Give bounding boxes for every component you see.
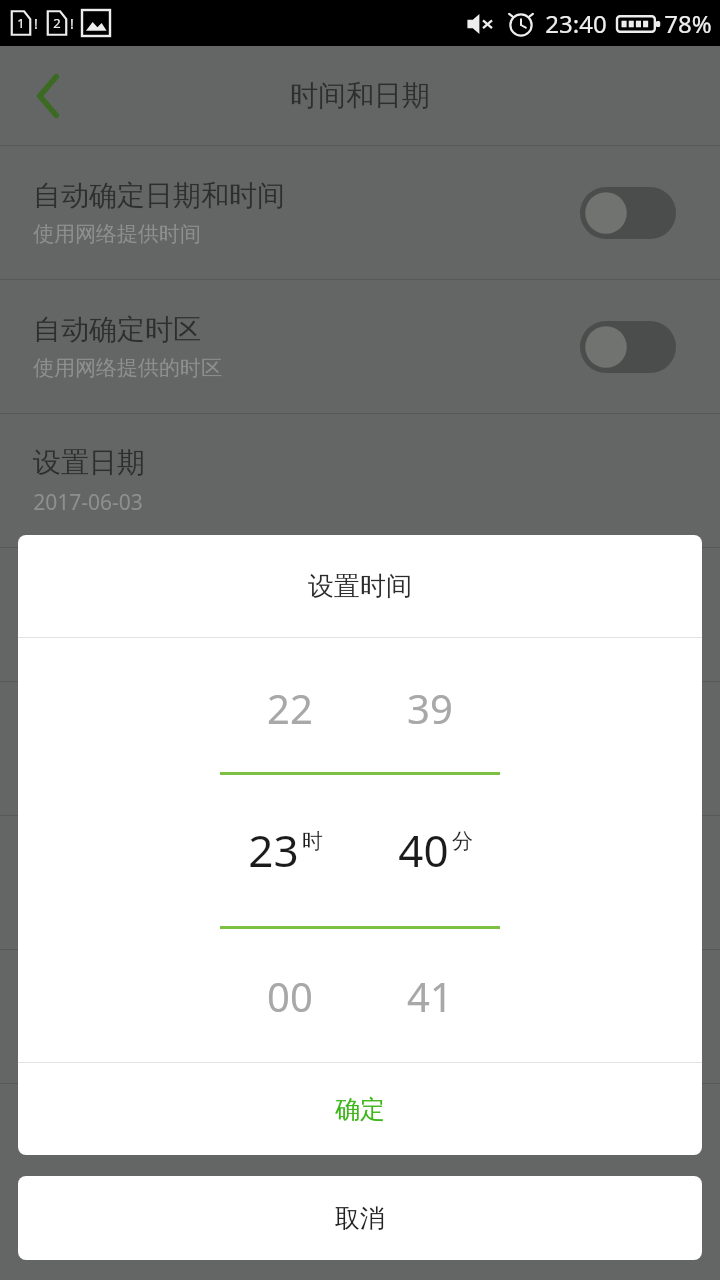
staticText: 使用网络提供的时区 [33,355,222,381]
button[interactable]: Toggle [580,187,676,239]
button[interactable]: 23 [210,820,360,880]
button[interactable] [0,950,720,1083]
staticText: 自动确定日期和时间 [33,178,285,213]
staticText: 2017-06-03 [33,488,143,517]
button[interactable] [0,682,720,815]
staticText: 取消 [335,1203,385,1234]
staticText: 使用网络提供时间 [33,221,201,247]
button[interactable]: 自动确定时区 [0,280,720,413]
staticText: 00 [267,969,313,1023]
button[interactable] [0,816,720,949]
staticText: 设置时间 [308,570,412,603]
staticText: 23 [248,820,299,880]
staticText: 2 [53,14,61,32]
staticText: 23:40 [545,7,607,40]
button[interactable]: 取消 [18,1176,702,1260]
staticText: 41 [407,969,453,1023]
staticText: 时间和日期 [290,78,430,113]
button[interactable] [0,548,720,681]
staticText: 自动确定时区 [33,312,201,347]
staticText: 设置日期 [33,445,145,480]
staticText: 39 [407,681,453,735]
button[interactable]: 确定 [18,1063,702,1155]
button[interactable]: 设置日期 [0,414,720,547]
staticText: 40 [398,820,449,880]
staticText: 78% [664,7,712,40]
staticText: 1 [17,14,25,32]
staticText: 22 [267,681,313,735]
staticText: 分 [452,828,473,854]
button[interactable]: 自动确定日期和时间 [0,146,720,279]
staticText: ! [34,14,38,33]
button[interactable]: Back [0,46,96,145]
button[interactable]: Toggle [580,321,676,373]
staticText: 确定 [335,1094,385,1125]
staticText: 时 [302,828,323,854]
button[interactable]: 40 [360,820,510,880]
staticText: ! [70,14,74,33]
